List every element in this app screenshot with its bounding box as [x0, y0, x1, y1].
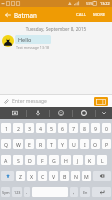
button[interactable]: 6: [58, 123, 67, 133]
button[interactable]: Emoji: [50, 107, 72, 119]
button[interactable]: Hello: [15, 35, 51, 44]
staticText: G: [52, 157, 56, 164]
button[interactable]: ,: [70, 187, 78, 197]
button[interactable]: 8: [80, 123, 89, 133]
button[interactable]: Shift: [1, 171, 14, 181]
button[interactable]: Enter: [92, 187, 111, 197]
staticText: Hello: [18, 36, 32, 43]
button[interactable]: P: [102, 139, 111, 149]
button[interactable]: K: [85, 155, 95, 165]
button[interactable]: Z: [16, 171, 25, 181]
button[interactable]: Q: [1, 139, 11, 149]
button[interactable]: R: [36, 139, 45, 149]
button[interactable]: H: [61, 155, 71, 165]
staticText: K: [88, 157, 92, 164]
staticText: T: [50, 141, 53, 148]
staticText: Text message 13:18: [16, 45, 50, 50]
button[interactable]: 123: [12, 187, 22, 197]
button[interactable]: Send message: [94, 97, 108, 106]
staticText: Y: [61, 141, 64, 148]
button[interactable]: 7: [69, 123, 78, 133]
button[interactable]: N: [71, 171, 80, 181]
staticText: E: [28, 141, 31, 148]
staticText: MORE: [93, 12, 106, 18]
button[interactable]: V: [49, 171, 58, 181]
button[interactable]: 2: [13, 123, 23, 133]
button[interactable]: Clipboard: [4, 107, 26, 119]
staticText: 1: [5, 125, 8, 132]
staticText: 13:22: [100, 1, 110, 6]
button[interactable]: M: [82, 171, 91, 181]
button[interactable]: E: [25, 139, 34, 149]
button[interactable]: 4: [36, 123, 45, 133]
button[interactable]: MORE: [91, 8, 108, 22]
button[interactable]: B: [60, 171, 69, 181]
button[interactable]: D: [25, 155, 35, 165]
staticText: F: [41, 157, 44, 164]
staticText: 53%: [86, 1, 94, 6]
button[interactable]: C: [38, 171, 47, 181]
staticText: 0: [105, 125, 108, 132]
staticText: CALL: [76, 12, 86, 18]
button[interactable]: .: [24, 187, 30, 197]
staticText: Z: [19, 173, 22, 180]
button[interactable]: Attach file: [0, 95, 12, 107]
button[interactable]: Hide keyboard: [96, 107, 112, 119]
staticText: D: [28, 157, 32, 164]
staticText: I: [84, 141, 86, 148]
button[interactable]: I: [80, 139, 89, 149]
staticText: Tuesday, September 8, 2015: [0, 26, 112, 32]
staticText: M: [84, 173, 89, 180]
button[interactable]: 3: [25, 123, 34, 133]
button[interactable]: A: [1, 155, 11, 165]
button[interactable]: Voice input: [27, 107, 49, 119]
staticText: U: [72, 141, 76, 148]
button[interactable]: J: [73, 155, 83, 165]
staticText: J: [77, 157, 79, 164]
button[interactable]: F: [37, 155, 47, 165]
button[interactable]: S: [13, 155, 23, 165]
button[interactable]: 9: [91, 123, 100, 133]
staticText: R: [39, 141, 43, 148]
staticText: A: [4, 157, 8, 164]
button[interactable]: Sym: [1, 187, 10, 197]
staticText: L: [101, 157, 104, 164]
staticText: N: [74, 173, 78, 180]
staticText: P: [105, 141, 109, 148]
button[interactable]: Back: [0, 7, 15, 22]
staticText: ,: [73, 189, 75, 196]
staticText: 3: [28, 125, 31, 132]
staticText: W: [16, 141, 21, 148]
button[interactable]: Y: [58, 139, 67, 149]
button[interactable]: CALL: [74, 8, 88, 22]
staticText: 6: [61, 125, 64, 132]
staticText: Batman: [14, 11, 37, 19]
button[interactable]: L: [97, 155, 107, 165]
staticText: 9: [94, 125, 97, 132]
button[interactable]: T: [47, 139, 56, 149]
button[interactable]: X: [27, 171, 36, 181]
button[interactable]: W: [13, 139, 23, 149]
staticText: S: [17, 157, 20, 164]
staticText: .: [26, 189, 28, 196]
button[interactable]: Settings: [73, 107, 95, 119]
button[interactable]: 1: [1, 123, 11, 133]
staticText: 7: [72, 125, 75, 132]
staticText: V: [52, 173, 56, 180]
staticText: O: [93, 141, 98, 148]
button[interactable]: 0: [102, 123, 111, 133]
staticText: Q: [4, 141, 9, 148]
staticText: Enter message: [12, 98, 47, 105]
button[interactable]: En: [80, 187, 90, 197]
staticText: En: [83, 190, 88, 195]
button[interactable]: U: [69, 139, 78, 149]
button[interactable]: O: [91, 139, 100, 149]
button[interactable]: G: [49, 155, 59, 165]
staticText: X: [30, 173, 34, 180]
button[interactable]: 5: [47, 123, 56, 133]
staticText: C: [41, 173, 45, 180]
staticText: H: [64, 157, 68, 164]
button[interactable]: Backspace: [93, 171, 111, 181]
staticText: 8: [83, 125, 86, 132]
